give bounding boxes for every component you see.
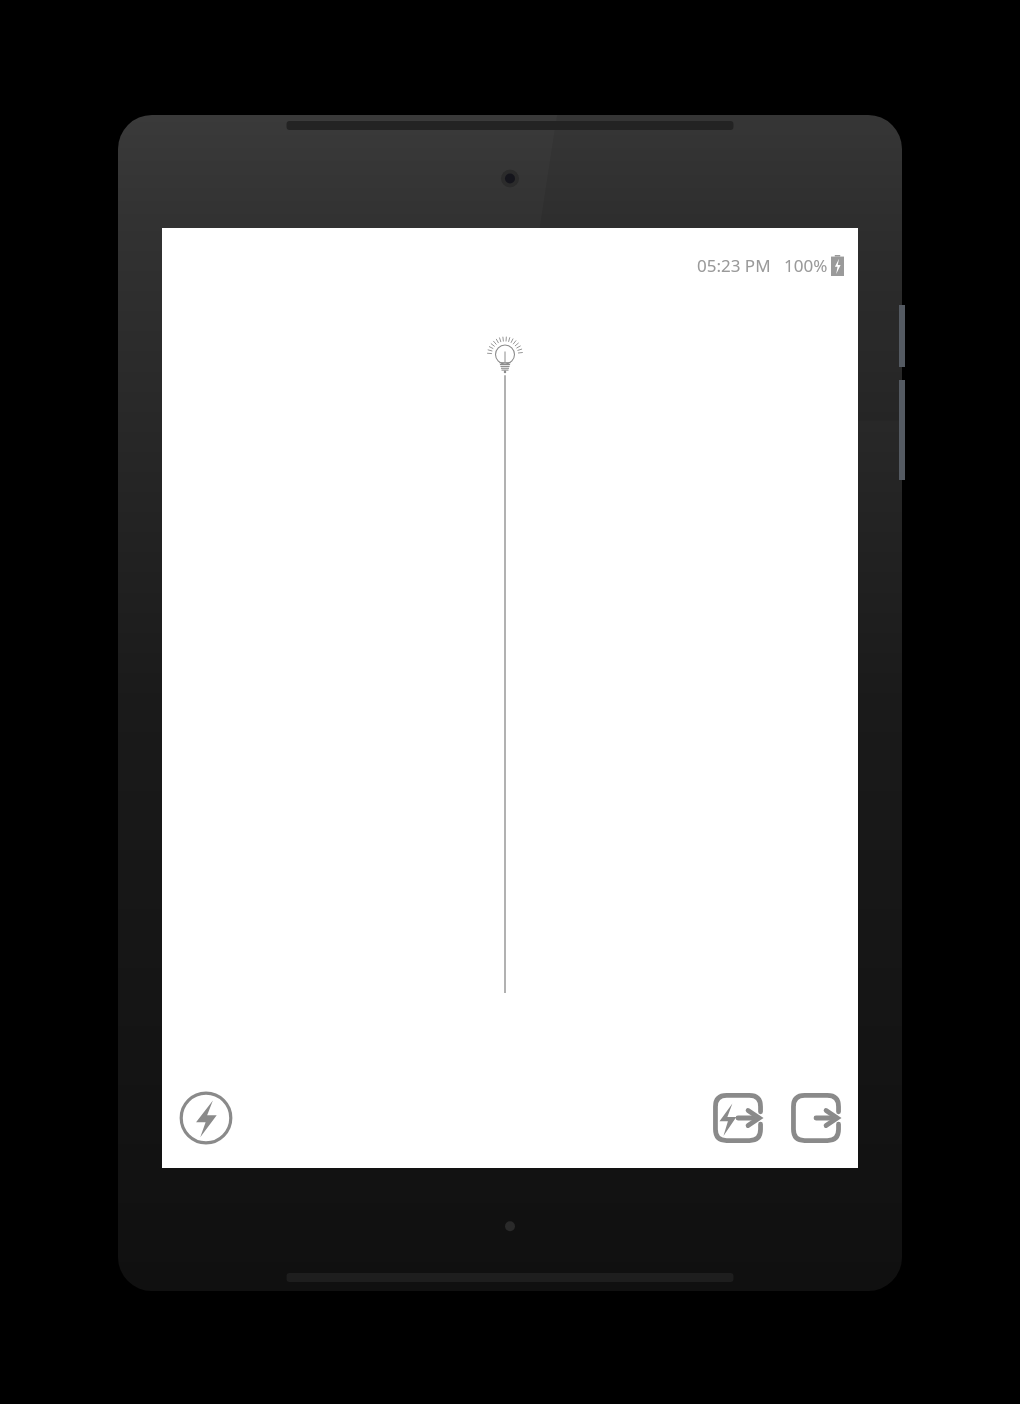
staticText: 05:23 PM <box>697 254 771 277</box>
button[interactable]: Exit and flash <box>708 1088 768 1148</box>
staticText: 100% <box>784 254 828 277</box>
button[interactable]: Flash <box>176 1088 236 1148</box>
button[interactable]: Exit <box>786 1088 846 1148</box>
button[interactable]: Toggle light <box>475 340 535 1040</box>
